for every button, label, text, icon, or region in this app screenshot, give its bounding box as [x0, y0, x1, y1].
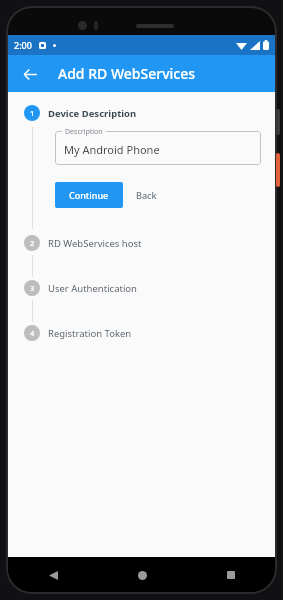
button[interactable]: Back	[123, 182, 170, 208]
staticText: 2	[30, 238, 35, 248]
staticText: 4	[30, 328, 35, 338]
button[interactable]: Back	[15, 59, 45, 89]
button[interactable]	[55, 131, 261, 165]
button[interactable]: 2	[24, 235, 275, 251]
staticText: 2:00	[14, 39, 32, 51]
staticText: 1	[30, 108, 35, 118]
button[interactable]: 3	[24, 280, 275, 296]
button[interactable]: Home	[129, 562, 155, 588]
staticText: Registration Token	[48, 327, 132, 340]
staticText: User Authentication	[48, 282, 137, 295]
button[interactable]: Recents	[218, 562, 244, 588]
staticText: Add RD WebServices	[58, 64, 196, 83]
staticText: Back	[136, 189, 157, 201]
button[interactable]: 4	[24, 325, 275, 341]
staticText: Continue	[69, 189, 109, 201]
staticText: My Android Phone	[64, 142, 160, 157]
button[interactable]: Continue	[55, 182, 123, 208]
staticText: Description	[65, 127, 103, 137]
staticText: Device Description	[48, 107, 137, 120]
staticText: RD WebServices host	[48, 237, 142, 250]
button[interactable]: Back	[40, 562, 66, 588]
staticText: 3	[30, 283, 35, 293]
button[interactable]: 1	[24, 105, 275, 121]
